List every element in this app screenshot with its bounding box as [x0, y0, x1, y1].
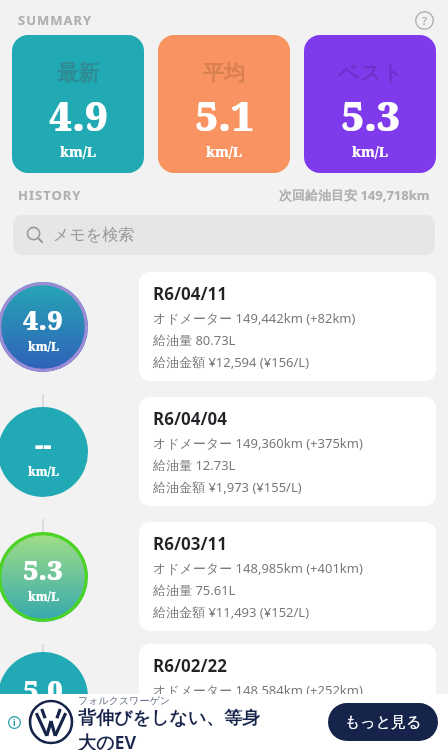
button[interactable]: --	[0, 394, 448, 509]
staticText: オドメーター 148,584km (+252km)	[153, 681, 363, 699]
staticText: もっと見る	[345, 713, 422, 732]
staticText: 最新	[57, 60, 99, 86]
button[interactable]: 4.9	[0, 269, 448, 384]
staticText: 4.9	[23, 301, 63, 338]
staticText: 給油金額 ¥11,493 (¥152/L)	[153, 603, 310, 621]
staticText: km/L	[352, 142, 388, 161]
staticText: 5.3	[23, 551, 63, 588]
staticText: 次回給油目安 149,718km	[279, 186, 430, 204]
staticText: メモを検索	[53, 225, 135, 245]
button[interactable]: Help	[409, 5, 439, 35]
staticText: 給油量 12.73L	[153, 456, 236, 474]
staticText: オドメーター 149,360km (+375km)	[153, 434, 363, 452]
button[interactable]: i	[0, 694, 448, 750]
staticText: SUMMARY	[18, 11, 93, 29]
staticText: R6/04/04	[153, 407, 227, 430]
staticText: フォルクスワーゲン	[78, 694, 170, 707]
staticText: オドメーター 149,442km (+82km)	[153, 309, 356, 327]
staticText: 給油金額 ¥1,973 (¥155/L)	[153, 478, 302, 496]
staticText: R6/04/11	[153, 282, 227, 305]
staticText: km/L	[28, 463, 59, 479]
staticText: 背伸びをしない、等身	[78, 707, 261, 730]
staticText: km/L	[206, 142, 242, 161]
button[interactable]: 平均	[158, 35, 290, 173]
staticText: i	[13, 716, 16, 728]
staticText: km/L	[28, 588, 59, 604]
staticText: km/L	[28, 338, 59, 354]
staticText: 大のEV	[78, 730, 137, 750]
button[interactable]: もっと見る	[328, 703, 438, 741]
staticText: 給油量 70.00L	[153, 703, 236, 721]
button[interactable]: メモを検索	[13, 215, 435, 255]
staticText: 4.9	[49, 88, 108, 142]
staticText: 給油金額 ¥12,594 (¥156/L)	[153, 353, 310, 371]
staticText: 平均	[203, 60, 245, 86]
button[interactable]: ベスト	[304, 35, 436, 173]
staticText: 給油量 75.61L	[153, 581, 236, 599]
button[interactable]: 5.0	[0, 644, 448, 750]
staticText: オドメーター 148,985km (+401km)	[153, 559, 363, 577]
staticText: 5.0	[23, 671, 63, 708]
staticText: R6/02/22	[153, 654, 227, 677]
button[interactable]: 最新	[12, 35, 144, 173]
staticText: R6/03/11	[153, 532, 227, 555]
staticText: 5.1	[195, 88, 254, 142]
staticText: 給油金額 ¥10,600 (¥151/L)	[153, 725, 310, 743]
staticText: km/L	[60, 142, 96, 161]
staticText: 5.3	[341, 88, 400, 142]
staticText: km/L	[28, 708, 59, 724]
button[interactable]: 5.3	[0, 519, 448, 634]
staticText: ベスト	[338, 60, 403, 86]
staticText: --	[35, 426, 52, 463]
staticText: HISTORY	[18, 186, 82, 204]
staticText: ?	[422, 13, 427, 28]
staticText: 給油量 80.73L	[153, 331, 236, 349]
